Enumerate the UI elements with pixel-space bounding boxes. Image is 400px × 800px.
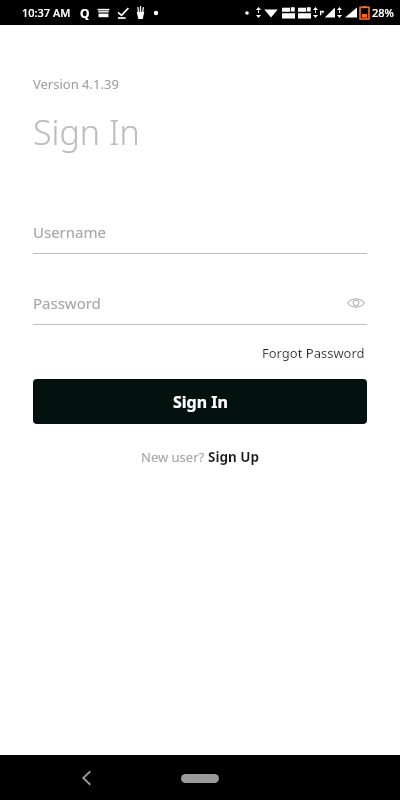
button[interactable]: Back bbox=[70, 762, 102, 794]
staticText: Password bbox=[33, 293, 345, 313]
staticText: Version 4.1.39 bbox=[33, 75, 119, 93]
button[interactable]: Home bbox=[173, 765, 227, 791]
staticText: New user? bbox=[141, 448, 208, 466]
staticText: 10:37 AM bbox=[22, 5, 71, 20]
staticText: Forgot Password bbox=[262, 344, 365, 362]
staticText: Username bbox=[33, 222, 367, 242]
staticText: Sign In bbox=[33, 109, 140, 155]
button[interactable]: Password bbox=[33, 290, 367, 325]
button[interactable]: Sign In bbox=[33, 379, 367, 424]
button[interactable]: Forgot Password bbox=[260, 341, 367, 365]
staticText: Sign Up bbox=[208, 448, 260, 466]
staticText: Sign In bbox=[173, 391, 228, 413]
button[interactable]: Username bbox=[33, 219, 367, 254]
button[interactable]: Sign Up bbox=[208, 448, 260, 466]
button[interactable]: Show password bbox=[345, 292, 367, 314]
staticText: Q bbox=[80, 5, 90, 21]
staticText: 28% bbox=[372, 5, 394, 20]
